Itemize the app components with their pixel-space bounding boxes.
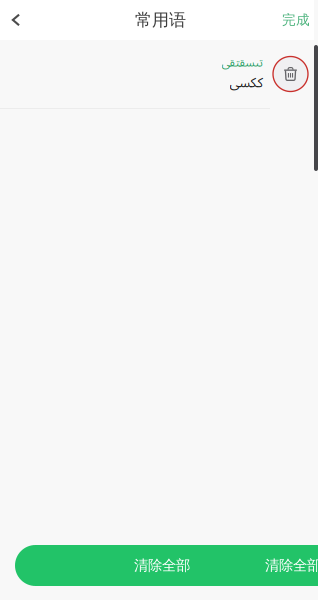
button[interactable]: 完成 xyxy=(274,0,318,40)
button[interactable]: Delete phrase xyxy=(273,56,308,91)
staticText: 常用语 xyxy=(135,9,186,31)
button[interactable]: Back xyxy=(0,0,32,40)
staticText: 清除全部 xyxy=(265,556,318,574)
staticText: تىسقتقى xyxy=(221,51,262,75)
staticText: 清除全部 xyxy=(134,556,190,574)
staticText: 完成 xyxy=(282,11,310,28)
staticText: ككسى xyxy=(229,69,262,97)
